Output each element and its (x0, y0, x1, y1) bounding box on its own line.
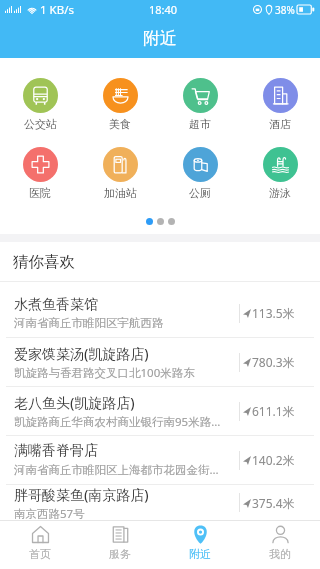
staticText: 公交站 (24, 117, 57, 131)
staticText: 611.1米 (252, 403, 295, 419)
staticText: 服务 (109, 547, 131, 561)
button[interactable]: 老八鱼头(凯旋路店) (0, 387, 320, 435)
staticText: 酒店 (269, 117, 291, 131)
staticText: 首页 (29, 547, 51, 561)
staticText: 水煮鱼香菜馆 (14, 296, 98, 314)
button[interactable]: 美食 (80, 78, 160, 131)
staticText: 美食 (109, 117, 131, 131)
staticText: 胖哥酸菜鱼(南京路店) (14, 485, 149, 504)
staticText: 老八鱼头(凯旋路店) (14, 393, 135, 412)
button[interactable]: 胖哥酸菜鱼(南京路店) (0, 485, 320, 520)
staticText: 附近 (143, 28, 177, 49)
staticText: 游泳 (269, 186, 291, 200)
button[interactable]: 满嘴香脊骨店 (0, 436, 320, 484)
staticText: 凯旋路与香君路交叉口北100米路东 (14, 365, 195, 381)
button[interactable]: 公厕 (160, 147, 240, 200)
staticText: 公厕 (189, 186, 211, 200)
staticText: 河南省商丘市睢阳区宇航西路 (14, 316, 164, 330)
button[interactable]: 首页 (0, 521, 80, 569)
staticText: 附近 (189, 547, 211, 561)
staticText: 河南省商丘市睢阳区上海都市花园金街… (14, 462, 219, 478)
button[interactable]: 超市 (160, 78, 240, 131)
button[interactable]: 公交站 (0, 78, 80, 131)
staticText: 780.3米 (252, 354, 295, 370)
staticText: 加油站 (104, 186, 137, 200)
button[interactable]: 游泳 (240, 147, 320, 200)
button[interactable]: 爱家馍菜汤(凯旋路店) (0, 338, 320, 386)
staticText: 140.2米 (252, 452, 295, 468)
staticText: 医院 (29, 186, 51, 200)
staticText: 猜你喜欢 (13, 252, 75, 272)
button[interactable]: 医院 (0, 147, 80, 200)
staticText: 18:40 (149, 2, 178, 17)
staticText: 我的 (269, 547, 291, 561)
button[interactable]: 酒店 (240, 78, 320, 131)
button[interactable]: 加油站 (80, 147, 160, 200)
staticText: 38% (275, 3, 295, 17)
staticText: 1 KB/s (40, 2, 74, 18)
staticText: 满嘴香脊骨店 (14, 442, 98, 460)
button[interactable]: 服务 (80, 521, 160, 569)
staticText: 凯旋路商丘华商农村商业银行南95米路… (14, 414, 221, 430)
button[interactable]: 水煮鱼香菜馆 (0, 289, 320, 337)
button[interactable]: 我的 (240, 521, 320, 569)
staticText: 375.4米 (252, 495, 295, 511)
staticText: 爱家馍菜汤(凯旋路店) (14, 344, 149, 363)
staticText: 超市 (189, 117, 211, 131)
staticText: 113.5米 (252, 305, 295, 321)
staticText: 南京西路57号 (14, 506, 85, 520)
button[interactable]: 附近 (160, 521, 240, 569)
